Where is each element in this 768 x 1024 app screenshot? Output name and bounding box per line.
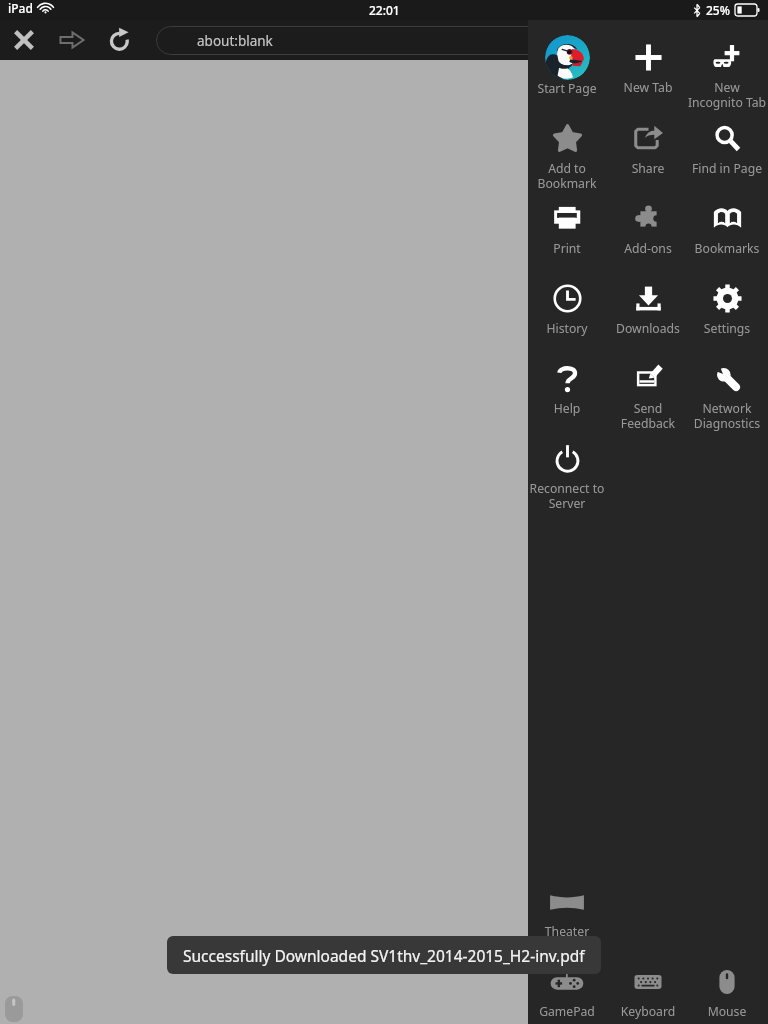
button[interactable]: Add-ons [600, 204, 696, 257]
button[interactable]: Add to Bookmark [519, 124, 615, 192]
staticText: Share [600, 160, 696, 177]
button[interactable]: Settings [679, 284, 768, 337]
staticText: about:blank [197, 32, 273, 50]
button[interactable]: Start Page [519, 35, 615, 97]
button[interactable]: Theater [519, 889, 615, 940]
staticText: New Tab [600, 79, 696, 96]
staticText: New Incognito Tab [679, 79, 768, 111]
button[interactable]: Send Feedback [600, 364, 696, 432]
button[interactable]: Network Diagnostics [679, 364, 768, 432]
staticText: Help [519, 400, 615, 417]
staticText: Mouse [679, 1003, 768, 1020]
staticText: 25% [706, 2, 730, 18]
staticText: Keyboard [600, 1003, 696, 1020]
button[interactable]: Forward [48, 20, 96, 60]
button[interactable]: Help [519, 364, 615, 417]
button[interactable]: Reconnect to Server [519, 444, 615, 512]
staticText: Theater [519, 923, 615, 940]
button[interactable]: Reload [96, 20, 144, 60]
button[interactable]: Mouse [679, 968, 768, 1020]
button[interactable]: Downloads [600, 284, 696, 337]
staticText: Bookmarks [679, 240, 768, 257]
button[interactable]: New Incognito Tab [679, 43, 768, 111]
staticText: Downloads [600, 320, 696, 337]
button[interactable]: Virtual mouse [5, 996, 23, 1022]
button[interactable]: New Tab [600, 43, 696, 96]
staticText: iPad [8, 0, 33, 16]
button[interactable]: Stop [0, 20, 48, 60]
staticText: GamePad [519, 1003, 615, 1020]
button[interactable]: GamePad [519, 970, 615, 1020]
staticText: Send Feedback [600, 400, 696, 432]
button[interactable]: Find in Page [679, 124, 768, 177]
button[interactable]: Bookmarks [679, 204, 768, 257]
staticText: Add to Bookmark [519, 160, 615, 192]
button[interactable]: Print [519, 204, 615, 257]
staticText: Network Diagnostics [679, 400, 768, 432]
button[interactable]: about:blank [156, 26, 768, 55]
staticText: Successfully Downloaded SV1thv_2014-2015… [183, 945, 585, 966]
staticText: Add-ons [600, 240, 696, 257]
button[interactable]: Share [600, 124, 696, 177]
staticText: Reconnect to Server [519, 480, 615, 512]
staticText: Settings [679, 320, 768, 337]
staticText: 22:01 [369, 2, 400, 18]
staticText: Print [519, 240, 615, 257]
staticText: History [519, 320, 615, 337]
staticText: Start Page [519, 80, 615, 97]
button[interactable]: History [519, 284, 615, 337]
button[interactable]: Keyboard [600, 970, 696, 1020]
staticText: Find in Page [679, 160, 768, 177]
